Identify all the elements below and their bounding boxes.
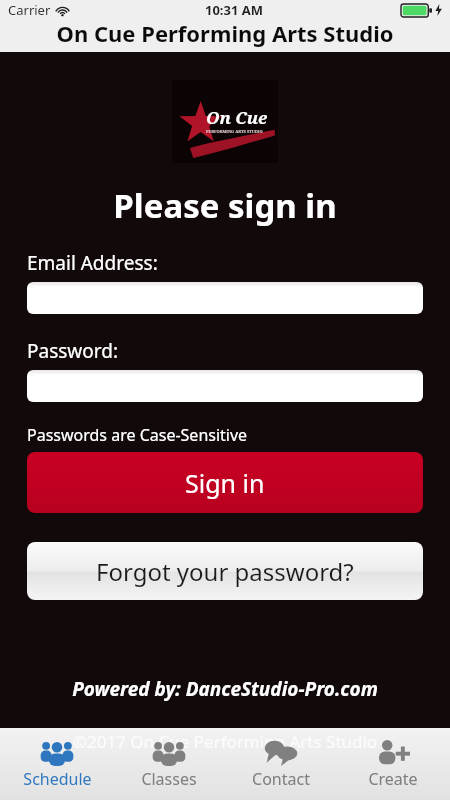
button[interactable]	[27, 282, 423, 314]
button[interactable]: Sign in	[27, 452, 423, 513]
staticText: On Cue	[206, 106, 268, 129]
staticText: Sign in	[185, 466, 265, 500]
staticText: ©2017 On Cue Performing Arts Studio	[0, 730, 450, 753]
button[interactable]: Forgot your password?	[27, 542, 423, 600]
staticText: Email Address:	[27, 250, 450, 276]
staticText: Password:	[27, 338, 450, 364]
staticText: On Cue Performing Arts Studio	[0, 18, 450, 48]
button[interactable]	[27, 370, 423, 402]
staticText: PERFORMING ARTS STUDIO	[206, 129, 263, 134]
button[interactable]: Create Account	[338, 738, 448, 790]
staticText: Schedule	[23, 768, 92, 790]
staticText: Forgot your password?	[96, 555, 354, 588]
staticText: Create Account	[338, 768, 448, 790]
staticText: Please sign in	[0, 183, 450, 228]
button[interactable]: Contact	[226, 738, 336, 790]
button[interactable]: Schedule	[2, 738, 112, 790]
staticText: Powered by: DanceStudio-Pro.com	[0, 676, 450, 702]
staticText: 10:31 AM	[205, 1, 264, 19]
staticText: Classes	[141, 768, 197, 790]
staticText: Contact	[252, 768, 310, 790]
staticText: Passwords are Case-Sensitive	[27, 424, 450, 446]
staticText: Carrier	[8, 1, 51, 19]
button[interactable]: Classes	[114, 738, 224, 790]
